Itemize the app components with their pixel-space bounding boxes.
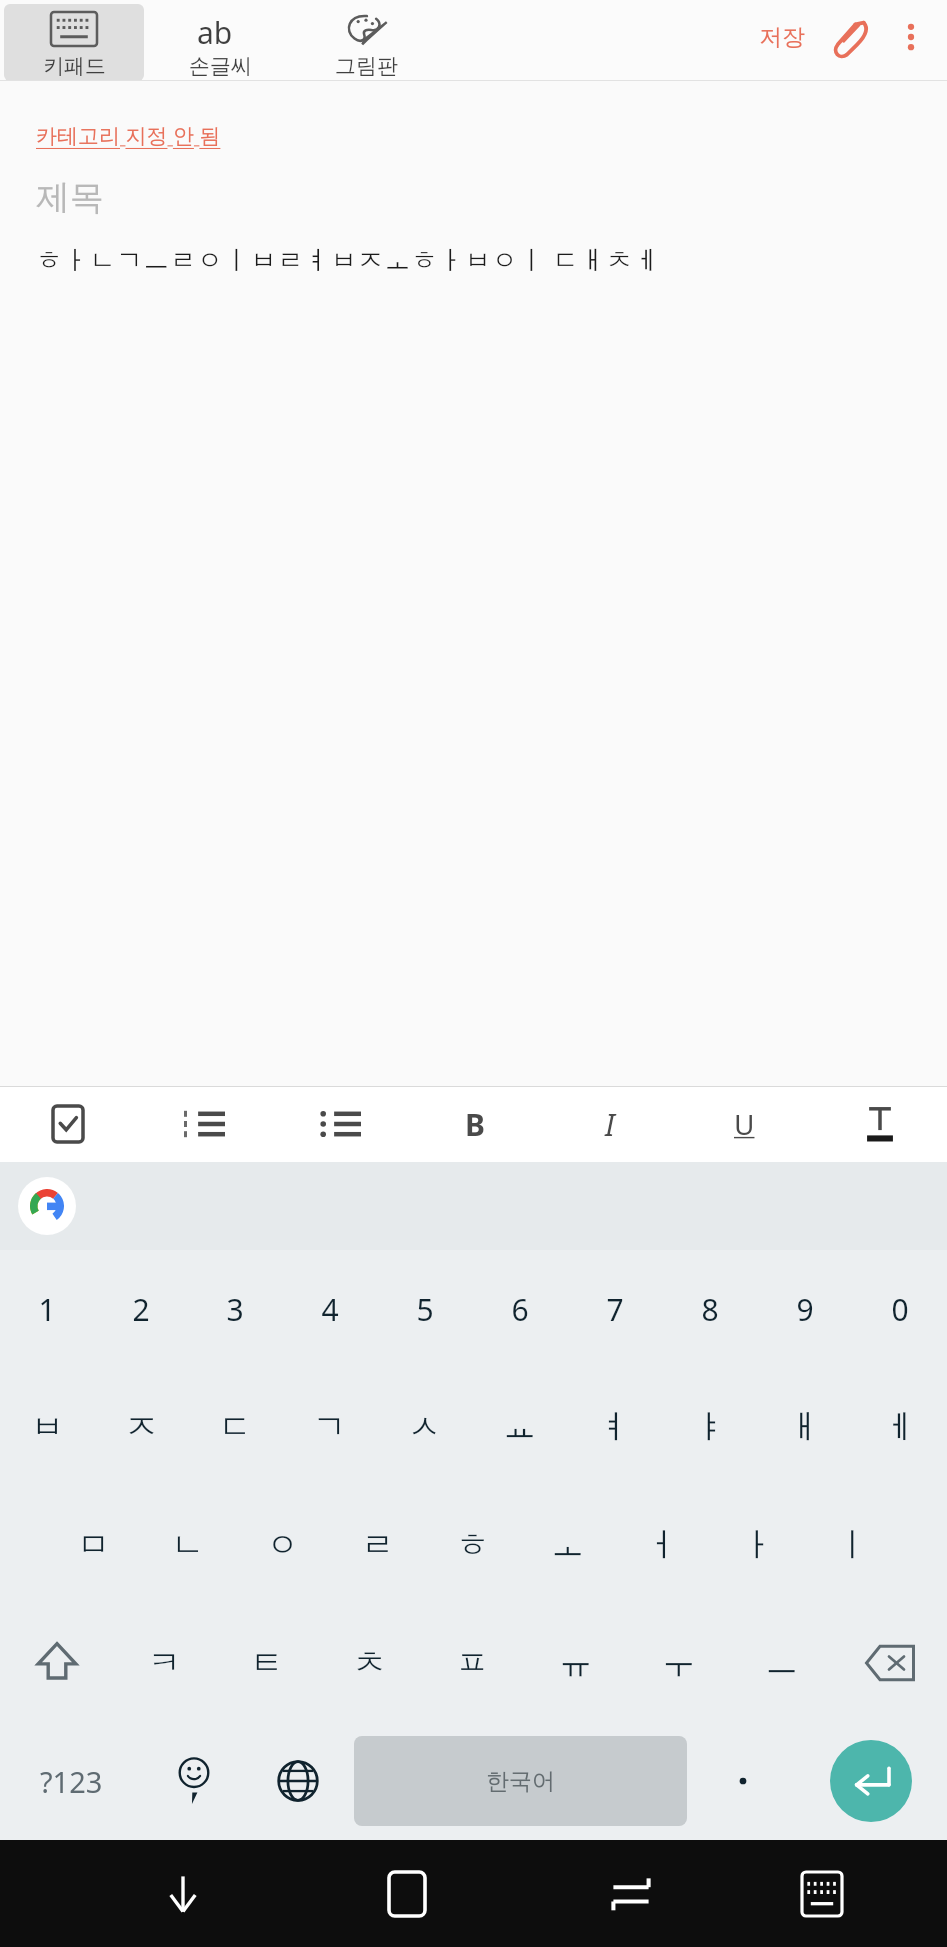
- staticText: ㄱ: [313, 1406, 346, 1448]
- staticText: ㅊ: [353, 1642, 386, 1684]
- button[interactable]: ㄱ: [282, 1368, 377, 1486]
- staticText: 손글씨: [189, 53, 252, 79]
- staticText: ㅜ: [662, 1642, 695, 1684]
- button[interactable]: abc: [150, 4, 290, 81]
- staticText: ㄴ: [171, 1524, 204, 1566]
- button[interactable]: [691, 1722, 795, 1840]
- staticText: ㅌ: [250, 1642, 283, 1684]
- staticText: ㅛ: [503, 1406, 536, 1448]
- staticText: ㅎ: [456, 1524, 489, 1566]
- button[interactable]: Google search: [18, 1177, 76, 1235]
- staticText: 4: [321, 1289, 339, 1330]
- button[interactable]: Switch keyboard: [739, 1840, 905, 1947]
- staticText: 0: [891, 1289, 909, 1330]
- button[interactable]: ㅔ: [852, 1368, 947, 1486]
- button[interactable]: 3: [188, 1250, 282, 1368]
- staticText: ㅗ: [551, 1524, 584, 1566]
- button[interactable]: 8: [662, 1250, 757, 1368]
- staticText: U: [734, 1105, 755, 1143]
- staticText: ㅣ: [836, 1524, 869, 1566]
- button[interactable]: 5: [377, 1250, 472, 1368]
- button[interactable]: ㅇ: [235, 1486, 330, 1604]
- button[interactable]: ㄷ: [188, 1368, 282, 1486]
- button[interactable]: Enter: [830, 1740, 912, 1822]
- staticText: 9: [796, 1289, 814, 1330]
- staticText: 카테고리 지정 안 됨: [36, 121, 221, 150]
- button[interactable]: Hide keyboard: [100, 1840, 266, 1947]
- button[interactable]: 저장: [745, 8, 819, 66]
- staticText: 5: [416, 1289, 434, 1330]
- button[interactable]: ㅑ: [662, 1368, 757, 1486]
- button[interactable]: ㅓ: [615, 1486, 710, 1604]
- button[interactable]: Text color: [812, 1086, 947, 1162]
- button[interactable]: ㅋ: [113, 1604, 215, 1722]
- staticText: abc: [197, 12, 243, 46]
- button[interactable]: ?123: [0, 1722, 142, 1840]
- button[interactable]: Bold: [407, 1086, 542, 1162]
- button[interactable]: 9: [757, 1250, 852, 1368]
- staticText: 키패드: [43, 53, 106, 79]
- staticText: ㅅ: [408, 1406, 441, 1448]
- button[interactable]: 6: [472, 1250, 567, 1368]
- button[interactable]: ㅂ: [0, 1368, 94, 1486]
- button[interactable]: 7: [567, 1250, 662, 1368]
- button[interactable]: ㅜ: [627, 1604, 730, 1722]
- button[interactable]: ㅠ: [524, 1604, 627, 1722]
- button[interactable]: ㄴ: [140, 1486, 235, 1604]
- button[interactable]: 0: [852, 1250, 947, 1368]
- staticText: ㅓ: [646, 1524, 679, 1566]
- button[interactable]: Emoji: [142, 1722, 246, 1840]
- staticText: 저장: [759, 23, 805, 52]
- button[interactable]: Attach: [819, 8, 885, 66]
- button[interactable]: 한국어: [354, 1736, 687, 1826]
- button[interactable]: 카테고리 지정 안 됨: [36, 121, 221, 150]
- staticText: ㅕ: [598, 1406, 631, 1448]
- button[interactable]: Italic: [542, 1086, 677, 1162]
- button[interactable]: ㅏ: [710, 1486, 805, 1604]
- staticText: ㅂ: [31, 1406, 64, 1448]
- staticText: ㅍ: [456, 1642, 489, 1684]
- staticText: ?123: [40, 1762, 103, 1801]
- button[interactable]: 4: [282, 1250, 377, 1368]
- button[interactable]: ㅡ: [730, 1604, 833, 1722]
- button[interactable]: ㅗ: [520, 1486, 615, 1604]
- button[interactable]: 키패드: [4, 4, 144, 81]
- staticText: I: [605, 1104, 615, 1145]
- staticText: ㅏ: [741, 1524, 774, 1566]
- button[interactable]: ㅐ: [757, 1368, 852, 1486]
- button[interactable]: ㅣ: [805, 1486, 900, 1604]
- staticText: ㅐ: [788, 1406, 821, 1448]
- button[interactable]: ㅁ: [46, 1486, 140, 1604]
- staticText: 1: [38, 1289, 56, 1330]
- button[interactable]: 그림판: [296, 4, 436, 81]
- button[interactable]: ㅕ: [567, 1368, 662, 1486]
- staticText: ㅔ: [883, 1406, 916, 1448]
- button[interactable]: Recents: [548, 1840, 714, 1947]
- button[interactable]: Backspace: [833, 1604, 947, 1722]
- button[interactable]: ㅎ: [425, 1486, 520, 1604]
- staticText: ㅠ: [559, 1642, 592, 1684]
- button[interactable]: Checklist: [0, 1086, 136, 1162]
- button[interactable]: Bulleted list: [272, 1086, 407, 1162]
- button[interactable]: More options: [885, 8, 937, 66]
- staticText: 7: [606, 1289, 624, 1330]
- button[interactable]: ㅅ: [377, 1368, 472, 1486]
- staticText: 제목: [36, 176, 104, 219]
- button[interactable]: Change language: [246, 1722, 350, 1840]
- button[interactable]: ㅛ: [472, 1368, 567, 1486]
- button[interactable]: Home: [324, 1840, 490, 1947]
- button[interactable]: ㄹ: [330, 1486, 425, 1604]
- button[interactable]: 2: [94, 1250, 188, 1368]
- staticText: ㅈ: [125, 1406, 158, 1448]
- button[interactable]: ㅍ: [421, 1604, 524, 1722]
- staticText: ㅋ: [148, 1642, 181, 1684]
- button[interactable]: ㅈ: [94, 1368, 188, 1486]
- button[interactable]: Shift: [0, 1604, 113, 1722]
- staticText: ㅎㅏㄴㄱㅡㄹㅇㅣㅂㄹㅕㅂㅈㅗㅎㅏㅂㅇㅣ ㄷㅐㅊㅔ: [36, 241, 660, 277]
- button[interactable]: Numbered list: [136, 1086, 272, 1162]
- button[interactable]: ㅌ: [215, 1604, 318, 1722]
- button[interactable]: 1: [0, 1250, 94, 1368]
- button[interactable]: Underline: [677, 1086, 812, 1162]
- button[interactable]: ㅊ: [318, 1604, 421, 1722]
- staticText: ㅁ: [77, 1524, 110, 1566]
